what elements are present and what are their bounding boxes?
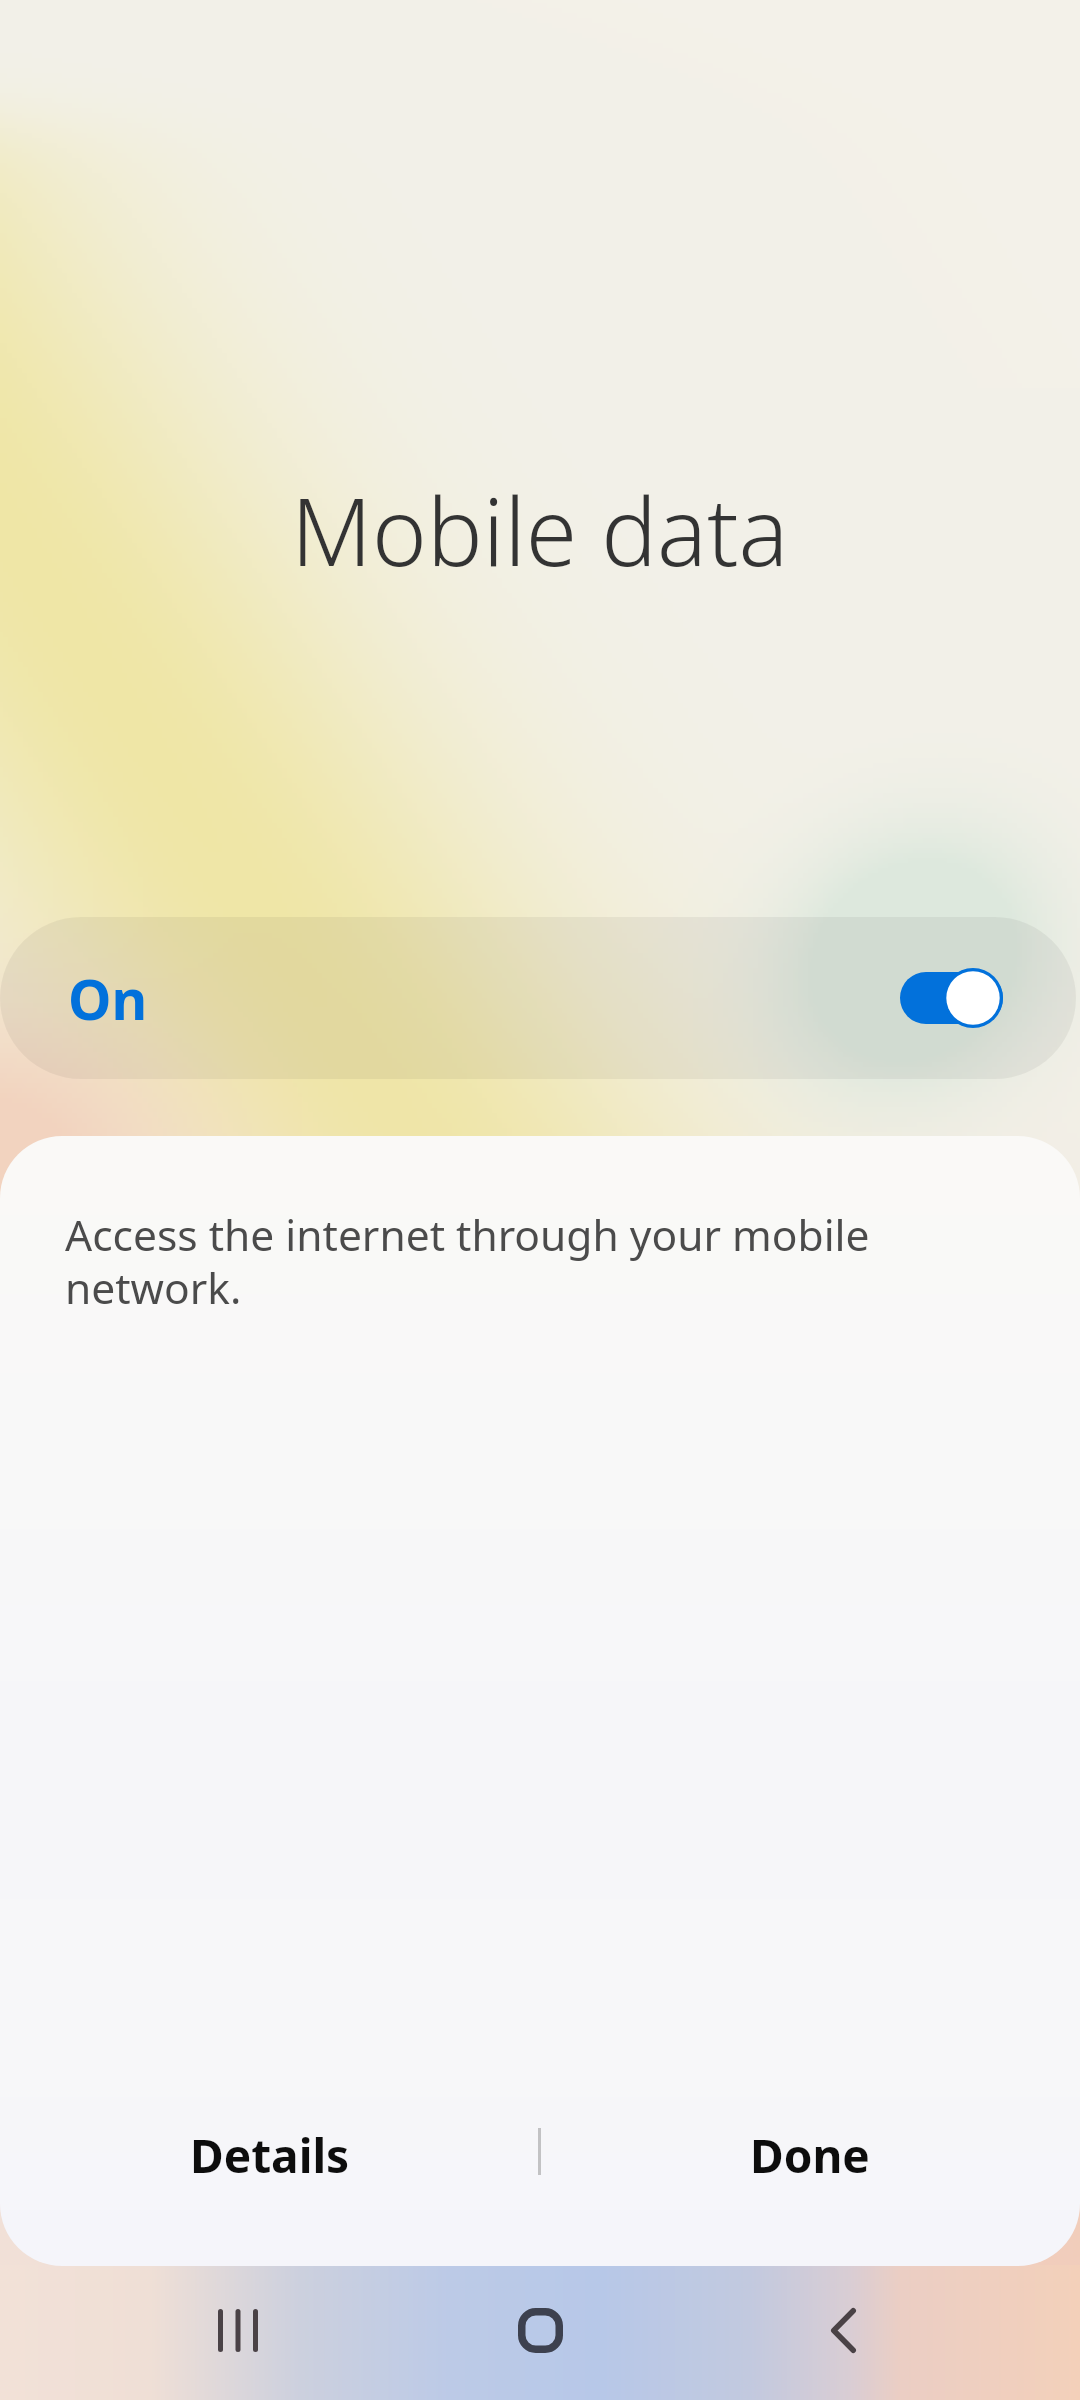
staticText: Done <box>750 2124 870 2187</box>
button[interactable]: Home <box>482 2272 598 2388</box>
button[interactable]: Details <box>0 2075 540 2235</box>
button[interactable]: Done <box>540 2075 1080 2235</box>
button[interactable]: Recent apps <box>180 2272 296 2388</box>
staticText: Details <box>190 2124 350 2187</box>
staticText: Access the internet through your mobile … <box>65 1206 870 1316</box>
staticText: On <box>68 961 148 1036</box>
button[interactable]: Back <box>785 2272 901 2388</box>
staticText: Mobile data <box>291 467 789 594</box>
button[interactable]: On <box>0 917 1076 1079</box>
